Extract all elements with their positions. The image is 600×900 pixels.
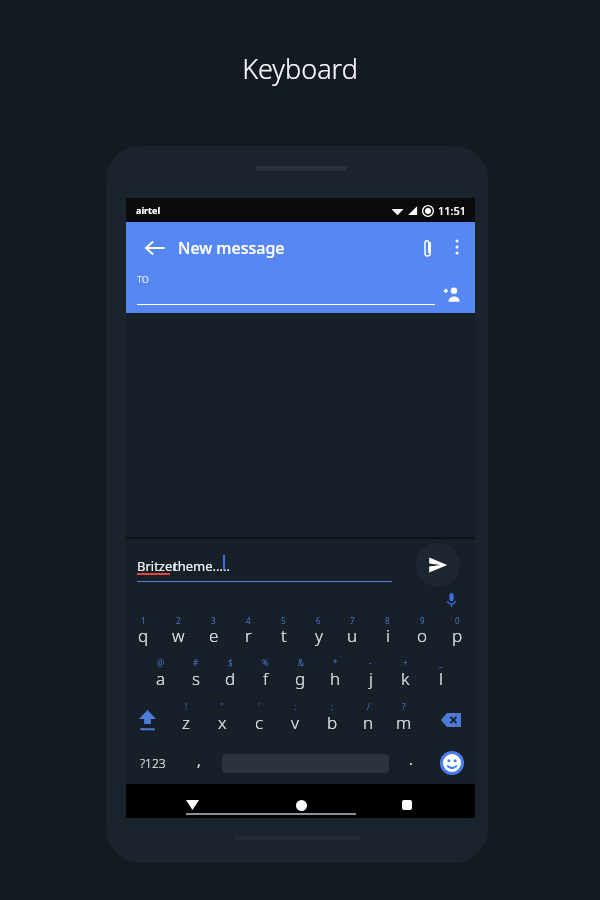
staticText: v (291, 711, 299, 734)
staticText: s (192, 667, 200, 690)
button[interactable]: 7 (335, 610, 370, 654)
staticText: . (409, 750, 413, 769)
staticText: ; (331, 701, 334, 712)
button[interactable]: * (318, 654, 353, 698)
staticText: x (218, 711, 227, 734)
button[interactable]: / (350, 698, 386, 742)
staticText: - (369, 657, 372, 668)
staticText: d (225, 667, 236, 690)
staticText: e (209, 624, 219, 647)
button[interactable]: ' (241, 698, 277, 742)
staticText: f (263, 667, 269, 690)
staticText: 3 (211, 615, 216, 626)
button[interactable]: % (248, 654, 283, 698)
button[interactable]: ; (314, 698, 350, 742)
button[interactable]: : (277, 698, 313, 742)
staticText: ' (258, 701, 260, 712)
button[interactable]: Emoji (429, 742, 475, 784)
staticText: ! (185, 701, 188, 712)
staticText: 11:51 (438, 203, 467, 218)
staticText: airtel (136, 204, 161, 216)
staticText: 5 (281, 615, 286, 626)
staticText: t (281, 624, 287, 647)
staticText: j (369, 667, 373, 690)
button[interactable]: Backspace (426, 698, 475, 742)
staticText: z (182, 711, 190, 734)
button[interactable]: $ (213, 654, 248, 698)
button[interactable]: Shift (126, 698, 168, 742)
staticText: r (245, 624, 252, 647)
staticText: c (255, 711, 264, 734)
button[interactable]: @ (143, 654, 178, 698)
button[interactable]: ? (386, 698, 422, 742)
staticText: + (403, 657, 408, 668)
staticText: _ (439, 657, 443, 668)
button[interactable]: & (283, 654, 318, 698)
button[interactable]: Voice input (438, 587, 464, 613)
staticText: / (367, 701, 370, 712)
staticText: Britzer (137, 557, 178, 575)
staticText: Keyboard (0, 50, 600, 87)
staticText: g (295, 667, 306, 690)
button[interactable]: ?123 (126, 742, 180, 784)
button[interactable]: Attach (409, 229, 447, 267)
staticText: l (439, 667, 443, 690)
button[interactable]: 5 (266, 610, 301, 654)
button[interactable]: 4 (231, 610, 266, 654)
button[interactable]: Back (174, 788, 210, 822)
button[interactable]: 6 (301, 610, 336, 654)
button[interactable]: - (353, 654, 388, 698)
staticText: * (333, 657, 338, 668)
button[interactable]: 1 (126, 610, 161, 654)
button[interactable]: # (178, 654, 213, 698)
button[interactable]: , (180, 742, 217, 784)
staticText: ?123 (140, 755, 166, 771)
button[interactable]: . (393, 742, 429, 784)
staticText: : (294, 701, 297, 712)
button[interactable]: 9 (405, 610, 440, 654)
staticText: 4 (246, 615, 251, 626)
staticText: 2 (176, 615, 181, 626)
staticText: b (327, 711, 338, 734)
staticText: ? (402, 701, 406, 712)
button[interactable]: Space (217, 742, 393, 784)
button[interactable]: More options (439, 229, 475, 265)
button[interactable]: Add recipient (433, 276, 469, 312)
staticText: n (363, 711, 374, 734)
button[interactable]: Back (136, 229, 174, 267)
staticText: y (315, 624, 323, 647)
staticText: o (417, 624, 428, 647)
staticText: k (401, 667, 410, 690)
staticText: 9 (420, 615, 425, 626)
button[interactable]: + (388, 654, 423, 698)
staticText: , (197, 751, 201, 770)
staticText: 0 (455, 615, 460, 626)
staticText: 8 (385, 615, 390, 626)
staticText: @ (157, 657, 165, 668)
staticText: New message (178, 237, 285, 259)
staticText: theme..... (173, 557, 230, 575)
staticText: 1 (141, 615, 146, 626)
staticText: $ (228, 657, 233, 668)
staticText: q (138, 624, 149, 647)
button[interactable]: " (204, 698, 240, 742)
staticText: # (193, 657, 199, 668)
button[interactable]: 8 (370, 610, 405, 654)
staticText: a (156, 667, 166, 690)
button[interactable]: 0 (440, 610, 475, 654)
staticText: i (386, 624, 390, 647)
staticText: 7 (350, 615, 355, 626)
button[interactable]: Recents (389, 788, 425, 822)
button[interactable]: Send (416, 543, 460, 587)
staticText: u (347, 624, 358, 647)
staticText: " (220, 701, 224, 712)
button[interactable]: 3 (196, 610, 231, 654)
staticText: TO (137, 273, 149, 285)
button[interactable]: Home (283, 788, 319, 822)
staticText: 6 (316, 615, 321, 626)
button[interactable]: ! (168, 698, 204, 742)
button[interactable]: _ (423, 654, 458, 698)
button[interactable]: 2 (161, 610, 196, 654)
staticText: m (396, 711, 412, 734)
staticText: % (262, 657, 269, 668)
